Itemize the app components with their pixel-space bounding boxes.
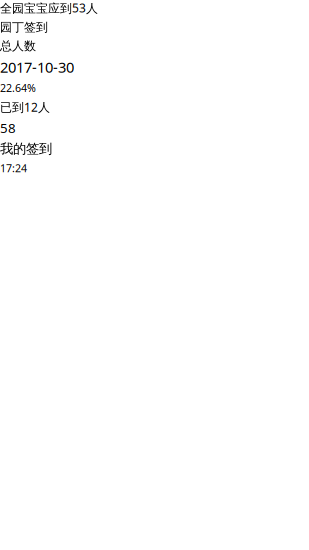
staticText: 已到12人 xyxy=(0,99,50,115)
staticText: 2017-10-30 xyxy=(0,57,74,77)
staticText: 17:24 xyxy=(0,161,27,175)
staticText: 园丁签到 xyxy=(0,20,48,35)
staticText: 全园宝宝应到53人 xyxy=(0,0,98,16)
staticText: 22.64% xyxy=(0,81,36,95)
staticText: 58 xyxy=(0,119,16,137)
staticText: 我的签到 xyxy=(0,141,52,157)
staticText: 总人数 xyxy=(0,39,36,53)
